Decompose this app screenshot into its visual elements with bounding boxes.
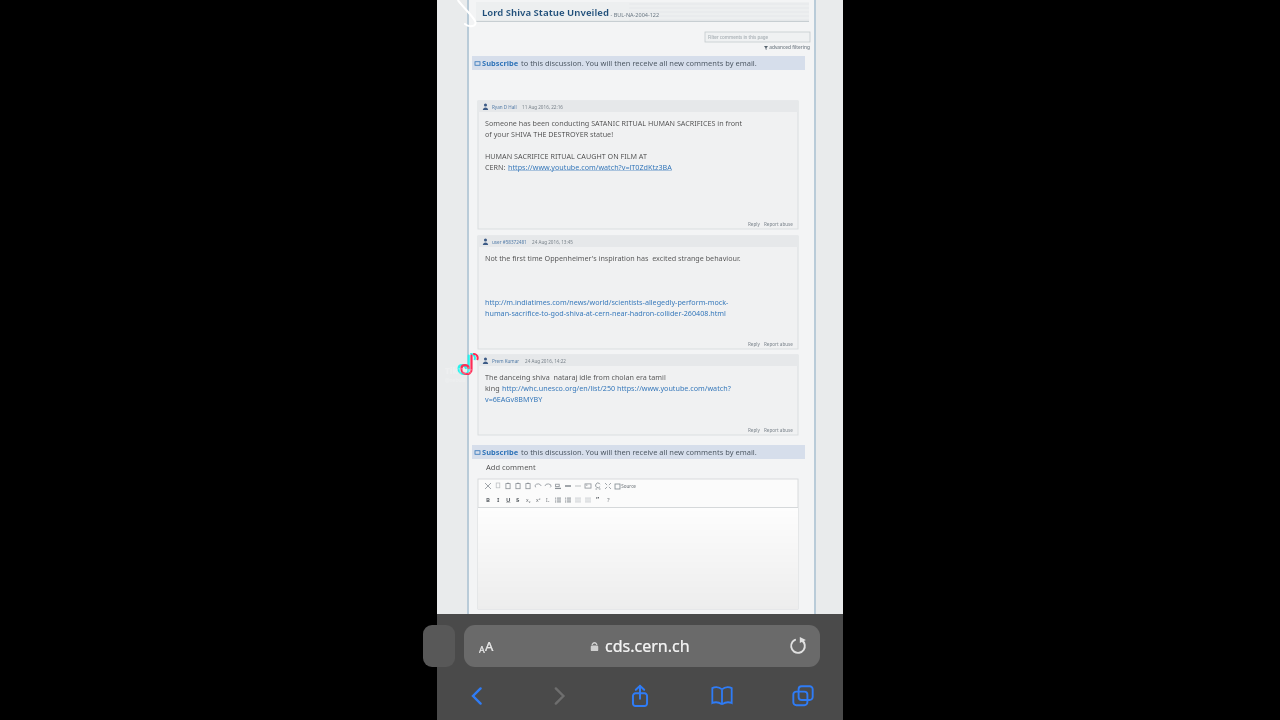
button[interactable]: Editor tool <box>478 479 798 609</box>
button[interactable]: Reply <box>748 341 760 347</box>
button[interactable]: Text size <box>464 625 820 667</box>
button[interactable]: Editor tool <box>583 480 593 492</box>
button[interactable]: Editor tool <box>603 494 613 506</box>
button[interactable]: Tabs <box>777 676 829 716</box>
button[interactable]: v=6EAGv8BMYBY <box>485 394 543 405</box>
staticText: S <box>516 496 520 504</box>
button[interactable]: Editor tool <box>573 480 583 492</box>
staticText: Prem Kumar <box>492 358 520 364</box>
button[interactable]: Editor tool <box>553 480 563 492</box>
button[interactable]: Share <box>614 676 666 716</box>
staticText: user #58372481 <box>492 239 527 245</box>
staticText: x² <box>536 497 541 504</box>
staticText: TikTok <box>445 365 473 377</box>
staticText: Lord Shiva Statue Unveiled <box>482 6 609 19</box>
staticText: - BUL-NA-2004-122 <box>609 11 660 18</box>
staticText: to this discussion. You will then receiv… <box>519 447 757 457</box>
button[interactable]: Bookmarks <box>696 676 748 716</box>
staticText: U <box>506 496 511 504</box>
button[interactable]: Lord Shiva Statue Unveiled <box>476 2 809 22</box>
staticText: advanced filtering <box>768 44 810 51</box>
button[interactable]: Editor tool <box>523 494 533 506</box>
button[interactable]: Report abuse <box>764 341 793 347</box>
button[interactable]: Reply <box>748 427 760 433</box>
button[interactable]: Editor tool <box>553 494 563 506</box>
staticText: king <box>485 383 502 394</box>
staticText: ? <box>607 496 610 504</box>
button[interactable]: Reply <box>748 221 760 227</box>
button[interactable]: Report abuse <box>764 221 793 227</box>
button[interactable]: Back <box>451 676 503 716</box>
button[interactable]: Editor tool <box>513 494 523 506</box>
button[interactable]: Editor tool <box>583 494 593 506</box>
button[interactable]: Editor tool <box>593 494 603 506</box>
staticText: B <box>486 496 490 504</box>
staticText: CERN: <box>485 162 508 173</box>
button[interactable]: Editor tool <box>483 480 493 492</box>
button[interactable]: Editor tool <box>513 480 523 492</box>
button[interactable]: Editor tool <box>483 494 493 506</box>
button[interactable]: Editor tool <box>563 494 573 506</box>
staticText: Filter comments in this page <box>708 34 769 40</box>
button[interactable]: advanced filtering <box>764 44 810 51</box>
staticText: Iₓ <box>546 497 550 504</box>
button[interactable]: Editor tool <box>593 480 603 492</box>
button[interactable]: Editor tool <box>523 480 533 492</box>
staticText: A <box>485 637 494 655</box>
button[interactable]: https://www.youtube.com/watch?v=lT0ZdKtz… <box>508 162 672 173</box>
staticText: A <box>479 643 485 655</box>
button[interactable]: Editor tool <box>573 494 583 506</box>
button[interactable]: Editor tool <box>503 480 513 492</box>
button[interactable]: Text size <box>479 637 494 655</box>
button[interactable]: Prem Kumar <box>478 355 798 435</box>
button[interactable]: Ryan D Hall <box>478 101 798 229</box>
button[interactable]: Editor tool <box>603 480 613 492</box>
button[interactable]: user #58372481 <box>478 236 798 349</box>
button[interactable]: http://m.indiatimes.com/news/world/scien… <box>485 297 729 308</box>
staticText: to this discussion. You will then receiv… <box>519 58 757 68</box>
staticText: HUMAN SACRIFICE RITUAL CAUGHT ON FILM AT <box>485 151 647 162</box>
button[interactable]: Reload page <box>786 634 810 658</box>
button[interactable]: Editor tool <box>493 494 503 506</box>
button[interactable]: Editor tool <box>503 494 513 506</box>
staticText: Not the first time Oppenheimer's inspira… <box>485 253 741 264</box>
button[interactable]: Editor tool <box>563 480 573 492</box>
button[interactable]: http://whc.unesco.org/en/list/250 https:… <box>502 383 731 394</box>
button[interactable]: Editor tool <box>533 494 543 506</box>
staticText: Source <box>620 483 636 489</box>
button[interactable]: Editor tool <box>533 480 543 492</box>
button[interactable]: Editor tool <box>493 480 503 492</box>
button[interactable]: Subscribe <box>472 56 805 70</box>
staticText: ” <box>596 495 600 505</box>
button[interactable]: Subscribe <box>472 445 805 459</box>
staticText: 24 Aug 2016, 13:45 <box>532 239 573 245</box>
button[interactable]: Filter comments in this page <box>705 32 810 42</box>
staticText: Ryan D Hall <box>492 104 517 110</box>
staticText: of your SHIVA THE DESTROYER statue! <box>485 129 614 140</box>
button[interactable]: human-sacrifice-to-god-shiva-at-cern-nea… <box>485 308 726 319</box>
staticText: Subscribe <box>482 447 519 457</box>
staticText: The danceing shiva nataraj idle from cho… <box>485 372 666 383</box>
staticText: Someone has been conducting SATANIC RITU… <box>485 118 743 129</box>
button[interactable]: Report abuse <box>764 427 793 433</box>
button[interactable]: Forward <box>533 676 585 716</box>
button[interactable]: Editor tool <box>543 494 553 506</box>
staticText: Add comment <box>486 462 536 472</box>
staticText: I <box>497 496 500 504</box>
button[interactable]: Source <box>615 483 636 489</box>
staticText: Subscribe <box>482 58 519 68</box>
staticText: cds.cern.ch <box>605 635 690 657</box>
button[interactable]: Editor tool <box>543 480 553 492</box>
staticText: 11 Aug 2016, 22:16 <box>522 104 563 110</box>
staticText: 24 Aug 2016, 14:22 <box>525 358 566 364</box>
staticText: x₂ <box>526 497 531 504</box>
